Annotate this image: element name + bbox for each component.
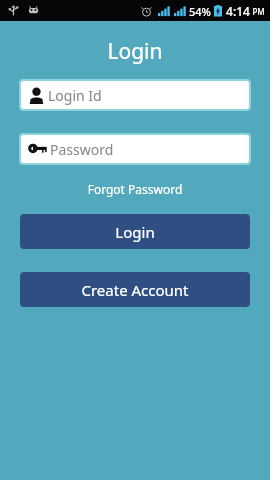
button[interactable]: Login Id xyxy=(21,81,249,109)
staticText: Forgot Password xyxy=(0,181,270,197)
staticText: 54% xyxy=(189,4,211,19)
staticText: PM xyxy=(252,6,265,17)
staticText: Login xyxy=(0,37,270,66)
staticText: Login xyxy=(115,222,155,242)
button[interactable]: Create Account xyxy=(20,272,250,307)
button[interactable]: Forgot Password xyxy=(0,177,270,201)
staticText: 4:14 xyxy=(226,3,250,19)
staticText: Create Account xyxy=(81,280,189,300)
button[interactable]: Login xyxy=(20,214,250,249)
button[interactable]: Password xyxy=(21,135,249,163)
staticText: Password xyxy=(50,140,114,159)
staticText: Login Id xyxy=(48,86,102,105)
